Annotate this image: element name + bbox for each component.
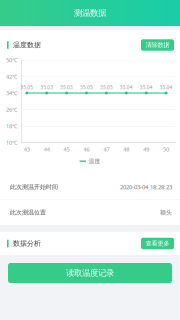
staticText: 35.05 (100, 84, 113, 90)
staticText: 35.05 (80, 84, 93, 90)
staticText: 48 (123, 145, 129, 153)
staticText: 查看更多 (145, 240, 169, 247)
staticText: 清除数据 (145, 41, 169, 49)
button[interactable]: 读取温度记录 (8, 263, 172, 283)
staticText: 35.03 (40, 84, 53, 90)
staticText: 34°C (6, 89, 18, 97)
staticText: 此次测温开始时间 (10, 183, 58, 191)
staticText: 10°C (6, 139, 18, 146)
staticText: 读取温度记录 (66, 268, 114, 278)
button[interactable]: 清除数据 (141, 39, 174, 51)
staticText: 46 (83, 145, 89, 153)
staticText: 35.04 (120, 84, 133, 90)
staticText: 45 (64, 145, 70, 153)
staticText: 温度 (88, 157, 100, 165)
staticText: 44 (44, 145, 50, 153)
button[interactable]: 查看更多 (141, 238, 174, 249)
staticText: 49 (143, 145, 149, 153)
staticText: 数据分析 (13, 239, 41, 248)
staticText: 温度数据 (13, 41, 41, 49)
staticText: 50 (163, 145, 169, 153)
staticText: 26°C (6, 106, 18, 113)
staticText: 35.04 (160, 84, 173, 90)
staticText: 35.05 (20, 84, 33, 90)
staticText: 35.03 (60, 84, 73, 90)
staticText: 18°C (6, 122, 18, 130)
staticText: 2020-03-04 18:28:23 (120, 183, 172, 191)
staticText: 50°C (6, 56, 18, 64)
staticText: 测温数据 (74, 8, 106, 18)
staticText: 35.04 (140, 84, 153, 90)
staticText: 43 (24, 145, 30, 153)
staticText: 额头 (160, 209, 172, 216)
staticText: 此次测温位置 (10, 209, 46, 216)
staticText: 47 (103, 145, 109, 153)
staticText: 42°C (6, 73, 18, 80)
